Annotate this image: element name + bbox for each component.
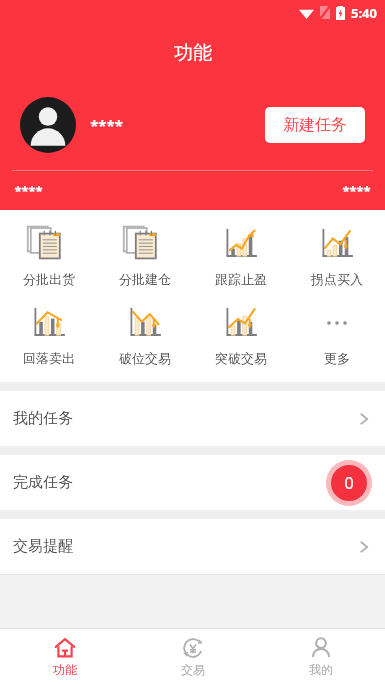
staticText: 功能 (53, 662, 77, 677)
button[interactable]: 交易提醒 (0, 519, 385, 574)
staticText: 完成任务 (13, 473, 73, 492)
staticText: 交易提醒 (13, 537, 73, 556)
button[interactable]: 我的 (257, 629, 385, 684)
button[interactable]: 我的任务 (0, 391, 385, 446)
button[interactable]: 新建任务 (265, 107, 365, 143)
staticText: 突破交易 (215, 350, 267, 366)
button[interactable]: 拐点买入 (289, 222, 385, 289)
staticText: 新建任务 (283, 115, 347, 135)
staticText: 回落卖出 (23, 350, 75, 366)
button[interactable]: Profile avatar (20, 97, 76, 153)
staticText: 破位交易 (119, 350, 171, 366)
staticText: **** (342, 182, 371, 200)
staticText: 我的任务 (13, 409, 73, 428)
staticText: 0 (344, 472, 354, 494)
button[interactable]: 功能 (0, 629, 129, 684)
staticText: 功能 (174, 41, 212, 65)
button[interactable]: 完成任务 (0, 455, 385, 510)
button[interactable]: 突破交易 (193, 301, 289, 368)
staticText: 分批出货 (23, 271, 75, 287)
button[interactable]: 跟踪止盈 (193, 222, 289, 289)
staticText: 更多 (324, 350, 350, 366)
staticText: 交易 (181, 662, 205, 677)
staticText: **** (14, 182, 43, 200)
button[interactable]: 更多 (289, 301, 385, 368)
staticText: 分批建仓 (119, 271, 171, 287)
button[interactable]: 分批建仓 (97, 222, 193, 289)
button[interactable]: 交易 (129, 629, 257, 684)
button[interactable]: 破位交易 (97, 301, 193, 368)
staticText: **** (90, 115, 123, 135)
button[interactable]: 分批出货 (0, 222, 97, 289)
staticText: 拐点买入 (311, 271, 363, 287)
button[interactable]: 回落卖出 (0, 301, 97, 368)
staticText: 5:40 (351, 4, 377, 22)
staticText: 我的 (309, 662, 333, 677)
staticText: 跟踪止盈 (215, 271, 267, 287)
